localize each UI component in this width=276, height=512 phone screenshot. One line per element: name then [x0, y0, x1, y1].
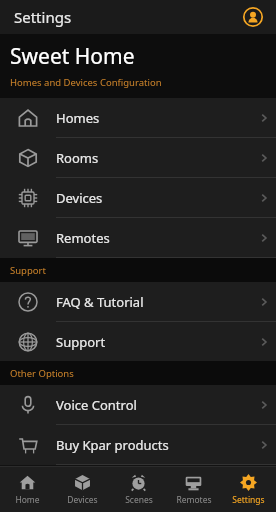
button[interactable]: Devices	[0, 178, 276, 217]
button[interactable]: Remotes	[0, 218, 276, 257]
button[interactable]: Rooms	[0, 138, 276, 177]
button[interactable]: Settings	[221, 467, 276, 512]
staticText: Other Options	[10, 367, 74, 380]
staticText: FAQ & Tutorial	[56, 293, 252, 311]
staticText: Support	[56, 333, 252, 351]
staticText: Devices	[56, 189, 252, 207]
staticText: Remotes	[56, 229, 252, 247]
button[interactable]: Voice Control	[0, 385, 276, 424]
button[interactable]: Remotes	[166, 467, 221, 512]
staticText: Settings	[232, 494, 265, 506]
staticText: Settings	[14, 7, 72, 27]
staticText: Remotes	[176, 494, 212, 506]
button[interactable]: Homes	[0, 98, 276, 137]
button[interactable]: Account	[242, 6, 264, 28]
staticText: Homes and Devices Configuration	[10, 76, 162, 89]
staticText: Buy Kpar products	[56, 436, 252, 454]
staticText: Rooms	[56, 149, 252, 167]
staticText: Scenes	[125, 494, 153, 506]
button[interactable]: Scenes	[111, 467, 166, 512]
staticText: Homes	[56, 109, 252, 127]
button[interactable]: Support	[0, 322, 276, 361]
staticText: Support	[10, 264, 46, 277]
staticText: Home	[15, 494, 40, 506]
staticText: Sweet Home	[10, 42, 135, 71]
button[interactable]: Home	[0, 467, 55, 512]
button[interactable]: Devices	[55, 467, 110, 512]
staticText: Voice Control	[56, 396, 252, 414]
button[interactable]: Buy Kpar products	[0, 425, 276, 464]
button[interactable]: FAQ & Tutorial	[0, 282, 276, 321]
staticText: Devices	[67, 494, 98, 506]
